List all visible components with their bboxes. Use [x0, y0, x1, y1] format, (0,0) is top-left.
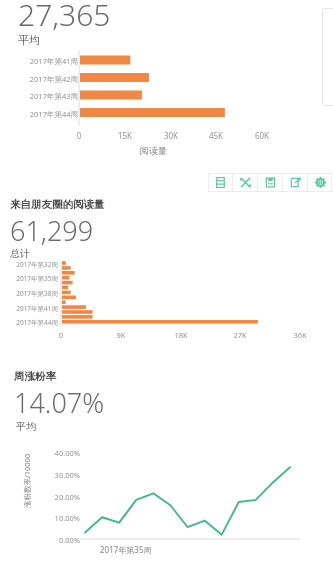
staticText: 2017年第44周 — [0, 318, 58, 327]
staticText: 2017年第44周 — [2, 109, 78, 119]
staticText: 2017年第41周 — [2, 56, 78, 66]
button[interactable]: Fullscreen — [233, 173, 257, 192]
staticText: 涨粉数率/10000 — [22, 446, 32, 516]
staticText: 平均 — [18, 33, 40, 47]
staticText: 9K — [108, 330, 134, 340]
staticText: 10.00% — [36, 513, 80, 523]
staticText: 0 — [48, 330, 74, 340]
staticText: 2017年第35周 — [0, 274, 58, 283]
staticText: 周涨粉率 — [14, 370, 56, 383]
staticText: 30.00% — [36, 470, 80, 480]
staticText: 0 — [65, 130, 93, 141]
staticText: 2017年第35周 — [100, 544, 152, 555]
button[interactable]: Save — [258, 173, 282, 192]
staticText: 61,299 — [10, 212, 94, 249]
staticText: 20.00% — [36, 492, 80, 502]
staticText: 15K — [111, 130, 139, 141]
button[interactable]: Settings — [308, 173, 332, 192]
staticText: 60K — [248, 130, 276, 141]
staticText: 27,365 — [18, 0, 111, 35]
staticText: 36K — [287, 330, 313, 340]
staticText: 45K — [202, 130, 230, 141]
staticText: 2017年第32周 — [0, 260, 58, 269]
staticText: 2017年第42周 — [2, 74, 78, 84]
staticText: 30K — [157, 130, 185, 141]
button[interactable]: Data table — [208, 173, 232, 192]
staticText: 40.00% — [36, 448, 80, 458]
staticText: 总计 — [10, 247, 30, 260]
staticText: 平均 — [16, 420, 36, 433]
staticText: 18K — [168, 330, 194, 340]
staticText: 2017年第41周 — [0, 304, 58, 313]
button[interactable]: Export — [283, 173, 307, 192]
staticText: 2017年第38周 — [0, 289, 58, 298]
staticText: 14.07% — [14, 384, 105, 421]
staticText: 2017年第43周 — [2, 91, 78, 101]
staticText: 27K — [227, 330, 253, 340]
staticText: 0.00% — [36, 535, 80, 545]
staticText: 阅读量 — [140, 145, 167, 156]
staticText: 来自朋友圈的阅读量 — [10, 198, 105, 211]
